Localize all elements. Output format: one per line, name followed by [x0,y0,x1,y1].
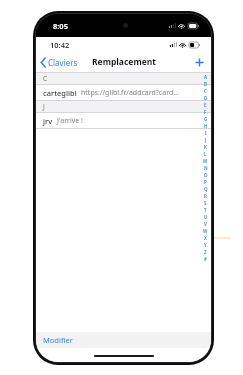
staticText: K [204,144,207,150]
staticText: E [204,102,207,108]
staticText: Q [204,186,208,192]
staticText: H [204,123,208,129]
staticText: A [204,74,208,80]
staticText: Z [204,249,207,255]
staticText: https://glibl.fr/addcard?card… [81,88,201,98]
staticText: 8:05 [53,21,68,31]
staticText: I [205,130,207,136]
staticText: Y [204,242,207,248]
staticText: J [205,137,207,143]
button[interactable]: Alphabetical index [202,74,209,263]
staticText: U [204,214,208,220]
staticText: # [204,256,207,262]
staticText: J'arrive ! [57,116,201,126]
button[interactable]: Claviers [36,55,82,70]
staticText: jrv [43,116,53,126]
staticText: T [204,207,207,213]
staticText: J [43,102,45,111]
staticText: Remplacement [92,56,156,68]
button[interactable]: jrv [36,113,211,128]
staticText: R [204,193,207,199]
staticText: L [204,151,207,157]
button[interactable]: carteglibl [36,85,211,100]
staticText: F [204,109,207,115]
staticText: W [203,228,208,234]
staticText: Claviers [48,57,78,68]
staticText: carteglibl [43,88,77,98]
staticText: B [204,81,207,87]
staticText: G [204,116,208,122]
staticText: X [204,235,207,241]
staticText: N [204,165,208,171]
staticText: S [204,200,207,206]
staticText: O [204,172,208,178]
button[interactable]: Modifier [36,332,79,348]
staticText: C [204,88,207,94]
button[interactable]: Add [188,55,211,70]
staticText: P [204,179,207,185]
staticText: Modifier [43,335,73,345]
staticText: V [204,221,207,227]
staticText: D [204,95,208,101]
staticText: 10:42 [50,40,70,50]
staticText: M [203,158,208,164]
staticText: C [43,74,48,83]
